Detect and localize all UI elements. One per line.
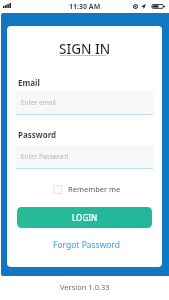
button[interactable]: Remember me (53, 184, 121, 194)
button[interactable]: LOGIN (17, 207, 152, 228)
other: Cellular signal (3, 3, 11, 8)
staticText: SIGN IN (59, 40, 111, 58)
other: Alarm (133, 4, 138, 9)
staticText: Enter email (21, 98, 56, 107)
other: Battery (152, 4, 166, 9)
button[interactable]: Enter Password (16, 145, 153, 169)
staticText: Remember me (68, 184, 121, 194)
other: Location (141, 4, 146, 9)
staticText: Version 1.0.33 (60, 282, 110, 292)
staticText: Email (18, 77, 40, 88)
button[interactable]: Forgot Password (53, 239, 121, 251)
staticText: 11:30 AM (69, 2, 101, 12)
button[interactable]: Enter email (16, 91, 153, 115)
staticText: Password (18, 129, 57, 140)
staticText: LOGIN (72, 212, 98, 223)
staticText: Enter Password (21, 152, 69, 161)
